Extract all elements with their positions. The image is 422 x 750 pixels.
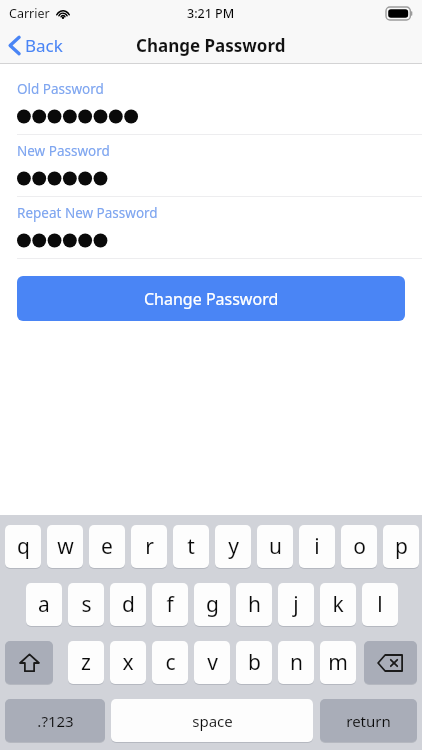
button[interactable]: k bbox=[320, 583, 356, 626]
button[interactable]: c bbox=[152, 641, 188, 684]
staticText: Repeat New Password bbox=[17, 204, 158, 222]
staticText: e bbox=[101, 532, 113, 561]
button[interactable]: New Password bbox=[0, 135, 422, 196]
staticText: Back bbox=[25, 34, 63, 57]
staticText: w bbox=[57, 532, 74, 561]
staticText: b bbox=[248, 648, 261, 677]
button[interactable]: s bbox=[68, 583, 104, 626]
staticText: c bbox=[165, 648, 176, 677]
button[interactable]: i bbox=[299, 525, 335, 568]
staticText: i bbox=[314, 532, 320, 561]
button[interactable]: e bbox=[89, 525, 125, 568]
button[interactable]: x bbox=[110, 641, 146, 684]
button[interactable]: j bbox=[278, 583, 314, 626]
staticText: 3:21 PM bbox=[187, 5, 235, 22]
button[interactable]: l bbox=[362, 583, 398, 626]
staticText: s bbox=[81, 590, 92, 619]
button[interactable]: d bbox=[110, 583, 146, 626]
button[interactable]: t bbox=[173, 525, 209, 568]
button[interactable]: v bbox=[194, 641, 230, 684]
staticText: t bbox=[187, 532, 195, 561]
staticText: x bbox=[122, 648, 134, 677]
staticText: n bbox=[290, 648, 303, 677]
staticText: j bbox=[293, 590, 299, 619]
button[interactable]: o bbox=[341, 525, 377, 568]
staticText: Change Password bbox=[136, 34, 286, 57]
button[interactable]: Change Password bbox=[17, 276, 405, 321]
staticText: return bbox=[346, 711, 391, 731]
staticText: g bbox=[206, 590, 219, 619]
staticText: p bbox=[395, 532, 408, 561]
staticText: m bbox=[328, 648, 348, 677]
button[interactable]: a bbox=[26, 583, 62, 626]
button[interactable]: g bbox=[194, 583, 230, 626]
staticText: l bbox=[377, 590, 383, 619]
button[interactable]: w bbox=[47, 525, 83, 568]
staticText: f bbox=[166, 590, 174, 619]
button[interactable]: Shift bbox=[5, 641, 53, 684]
staticText: d bbox=[122, 590, 135, 619]
staticText: o bbox=[353, 532, 366, 561]
button[interactable]: y bbox=[215, 525, 251, 568]
button[interactable]: m bbox=[320, 641, 356, 684]
button[interactable]: b bbox=[236, 641, 272, 684]
staticText: u bbox=[269, 532, 282, 561]
button[interactable]: space bbox=[111, 699, 313, 742]
staticText: Change Password bbox=[144, 288, 279, 310]
button[interactable]: p bbox=[383, 525, 419, 568]
staticText: y bbox=[228, 532, 239, 561]
button[interactable]: f bbox=[152, 583, 188, 626]
staticText: k bbox=[332, 590, 344, 619]
staticText: Old Password bbox=[17, 80, 104, 98]
button[interactable]: return bbox=[320, 699, 417, 742]
staticText: space bbox=[192, 711, 233, 731]
staticText: q bbox=[17, 532, 30, 561]
staticText: New Password bbox=[17, 142, 110, 160]
button[interactable]: h bbox=[236, 583, 272, 626]
staticText: .?123 bbox=[37, 711, 74, 731]
button[interactable]: .?123 bbox=[5, 699, 105, 742]
button[interactable]: u bbox=[257, 525, 293, 568]
button[interactable]: Back bbox=[0, 29, 77, 62]
button[interactable]: q bbox=[5, 525, 41, 568]
button[interactable]: Backspace bbox=[364, 641, 417, 684]
staticText: r bbox=[145, 532, 154, 561]
button[interactable]: z bbox=[68, 641, 104, 684]
button[interactable]: r bbox=[131, 525, 167, 568]
staticText: z bbox=[81, 648, 91, 677]
staticText: h bbox=[248, 590, 261, 619]
staticText: Carrier bbox=[9, 5, 50, 22]
staticText: a bbox=[38, 590, 50, 619]
button[interactable]: n bbox=[278, 641, 314, 684]
button[interactable]: Old Password bbox=[0, 73, 422, 134]
button[interactable]: Repeat New Password bbox=[0, 197, 422, 258]
staticText: v bbox=[207, 648, 218, 677]
